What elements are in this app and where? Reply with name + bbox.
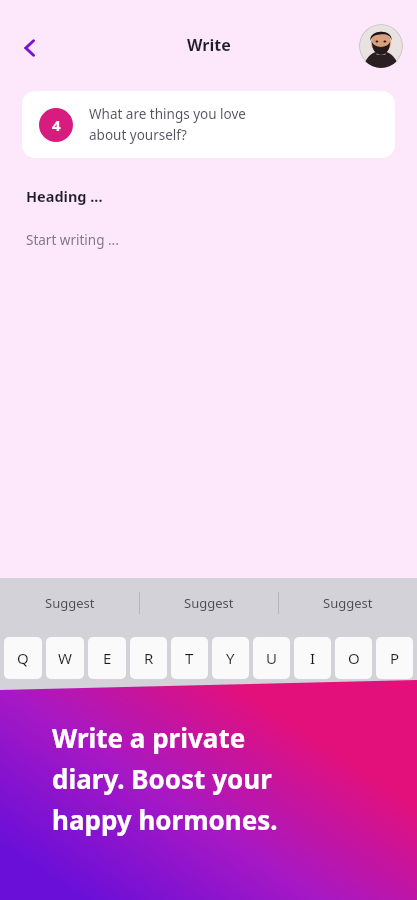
button[interactable]: Start writing ... — [26, 231, 346, 531]
staticText: Start writing ... — [26, 231, 119, 249]
staticText: 4 — [52, 115, 61, 135]
button[interactable]: Q — [4, 637, 42, 679]
button[interactable]: Y — [212, 637, 249, 679]
button[interactable]: Suggest — [279, 578, 417, 628]
staticText: U — [266, 648, 277, 668]
button[interactable]: T — [171, 637, 208, 679]
staticText: Suggest — [323, 594, 373, 612]
staticText: I — [310, 648, 316, 668]
staticText: Write — [187, 34, 231, 56]
staticText: What are things you love — [89, 105, 246, 123]
button[interactable]: W — [46, 637, 84, 679]
staticText: Suggest — [184, 594, 234, 612]
button[interactable]: P — [376, 637, 413, 679]
staticText: P — [390, 648, 400, 668]
staticText: Y — [226, 648, 235, 668]
staticText: happy hormones. — [52, 802, 278, 837]
button[interactable]: Heading ... — [26, 186, 276, 212]
button[interactable]: U — [253, 637, 290, 679]
button[interactable]: R — [130, 637, 167, 679]
button[interactable]: 4 — [22, 91, 395, 158]
staticText: Write a private — [52, 720, 246, 755]
staticText: R — [144, 648, 154, 668]
staticText: E — [103, 648, 112, 668]
staticText: W — [58, 648, 72, 668]
staticText: Q — [17, 648, 29, 668]
button[interactable]: E — [88, 637, 126, 679]
staticText: about yourself? — [89, 126, 187, 144]
button[interactable]: Suggest — [0, 578, 139, 628]
button[interactable]: Back — [8, 26, 52, 70]
staticText: diary. Boost your — [52, 761, 272, 796]
staticText: Heading ... — [26, 186, 103, 206]
button[interactable]: O — [335, 637, 372, 679]
staticText: T — [185, 648, 194, 668]
staticText: O — [348, 648, 360, 668]
button[interactable]: Suggest — [140, 578, 278, 628]
button[interactable]: I — [294, 637, 331, 679]
button[interactable]: Profile — [359, 24, 403, 68]
staticText: Suggest — [45, 594, 95, 612]
